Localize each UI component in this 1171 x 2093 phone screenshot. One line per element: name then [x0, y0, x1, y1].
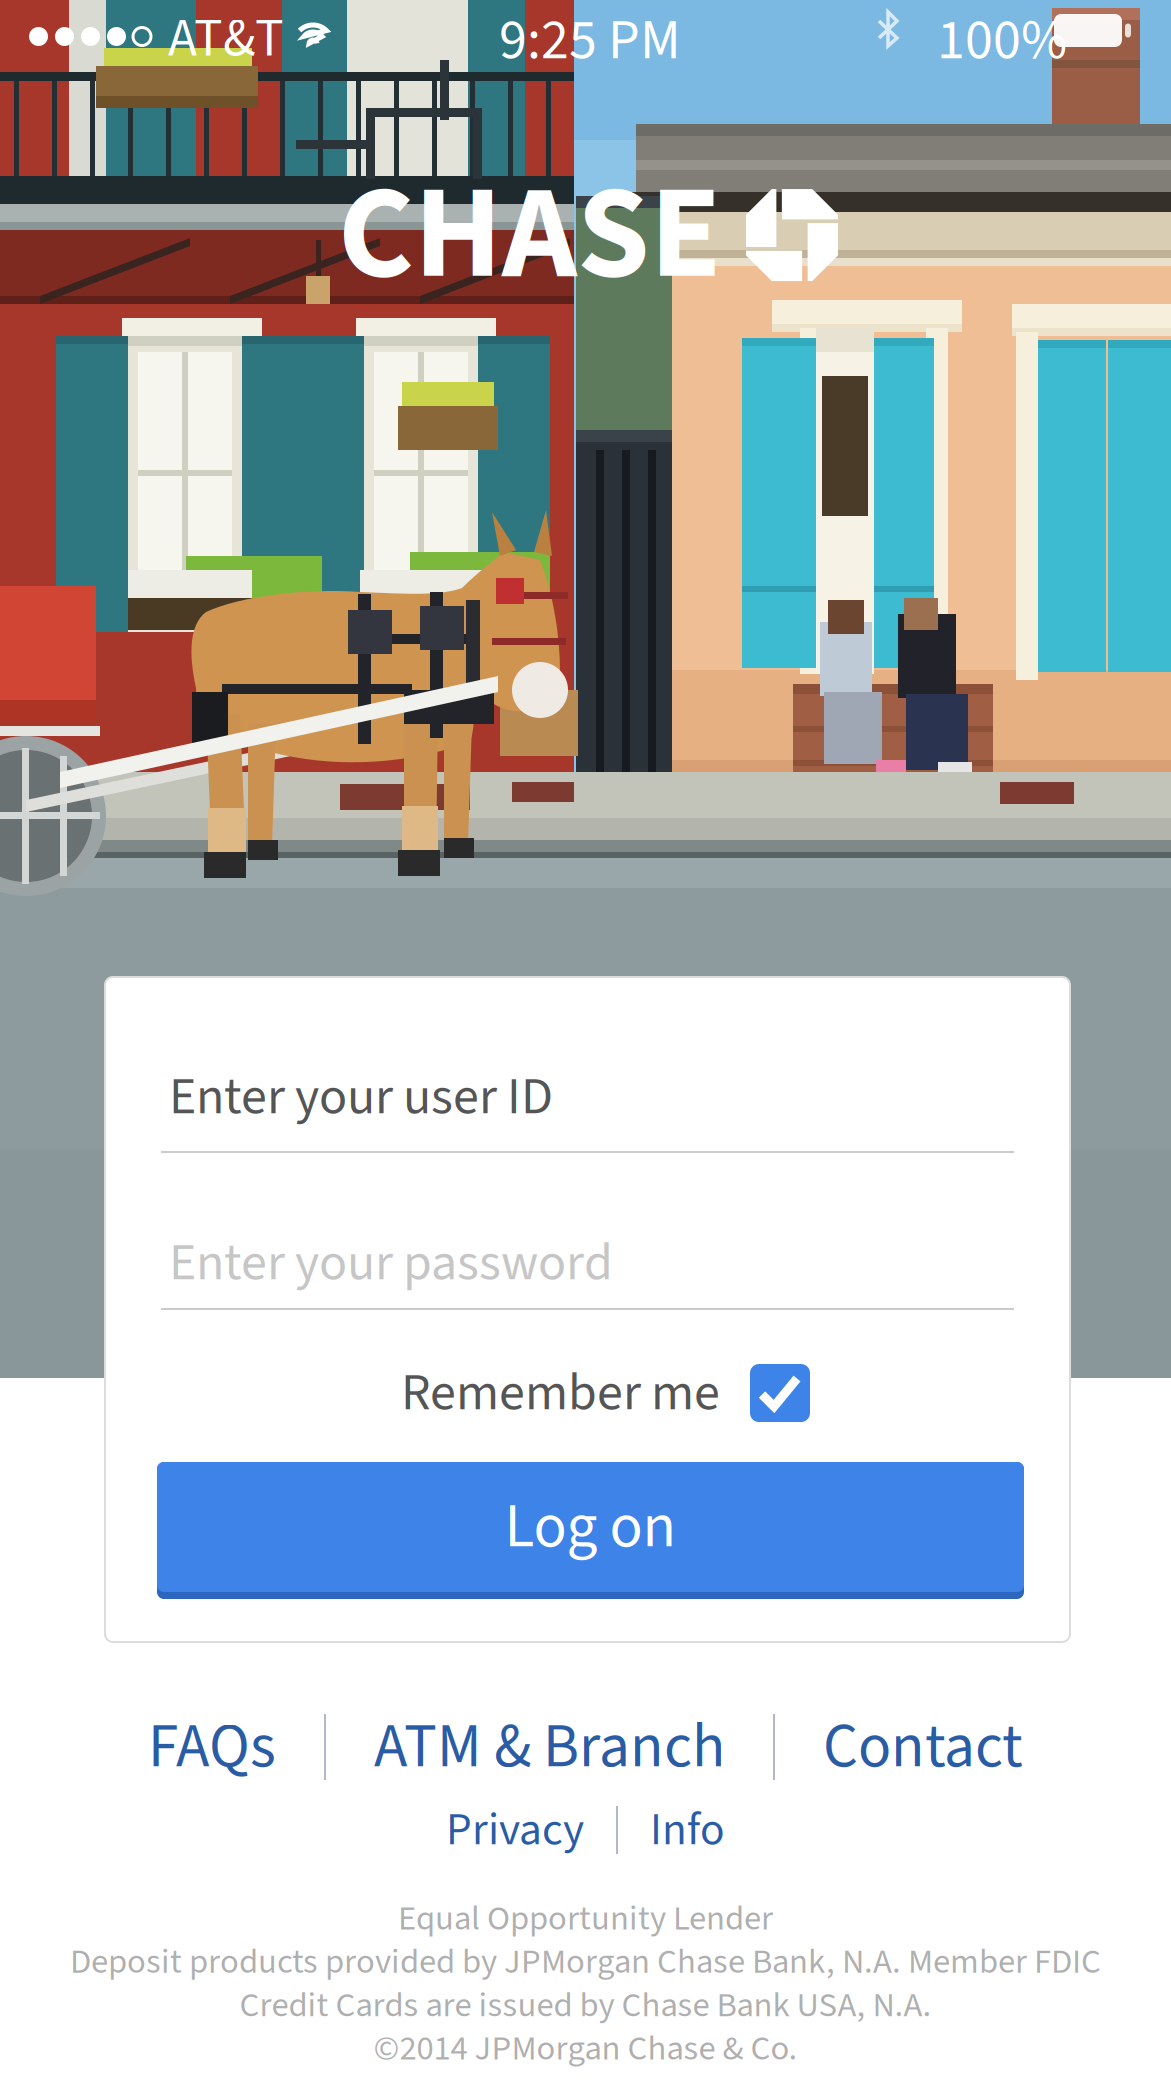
staticText: ©2014 JPMorgan Chase & Co.: [373, 2024, 797, 2073]
staticText: FAQs: [148, 1703, 276, 1791]
staticText: AT&T: [168, 1, 284, 77]
staticText: CHASE: [338, 142, 722, 328]
staticText: 9:25 PM: [499, 1, 681, 81]
staticText: Credit Cards are issued by Chase Bank US…: [239, 1981, 931, 2030]
button[interactable]: Info: [618, 1794, 757, 1866]
button[interactable]: Privacy: [414, 1794, 616, 1866]
staticText: Contact: [823, 1703, 1023, 1791]
staticText: ATM & Branch: [374, 1703, 725, 1791]
staticText: 100%: [937, 1, 1067, 81]
button[interactable]: ATM & Branch: [326, 1700, 773, 1794]
staticText: Deposit products provided by JPMorgan Ch…: [70, 1937, 1101, 1987]
staticText: Equal Opportunity Lender: [398, 1894, 773, 1943]
button[interactable]: Remember me: [401, 1346, 810, 1440]
staticText: Info: [650, 1798, 725, 1862]
button[interactable]: Log on: [157, 1462, 1024, 1599]
staticText: Remember me: [401, 1356, 720, 1430]
staticText: Privacy: [446, 1798, 584, 1862]
button[interactable]: Contact: [775, 1700, 1071, 1794]
staticText: Enter your user ID: [169, 1060, 553, 1134]
staticText: Enter your password: [169, 1226, 613, 1300]
button[interactable]: FAQs: [100, 1700, 324, 1794]
staticText: Log on: [504, 1483, 676, 1571]
